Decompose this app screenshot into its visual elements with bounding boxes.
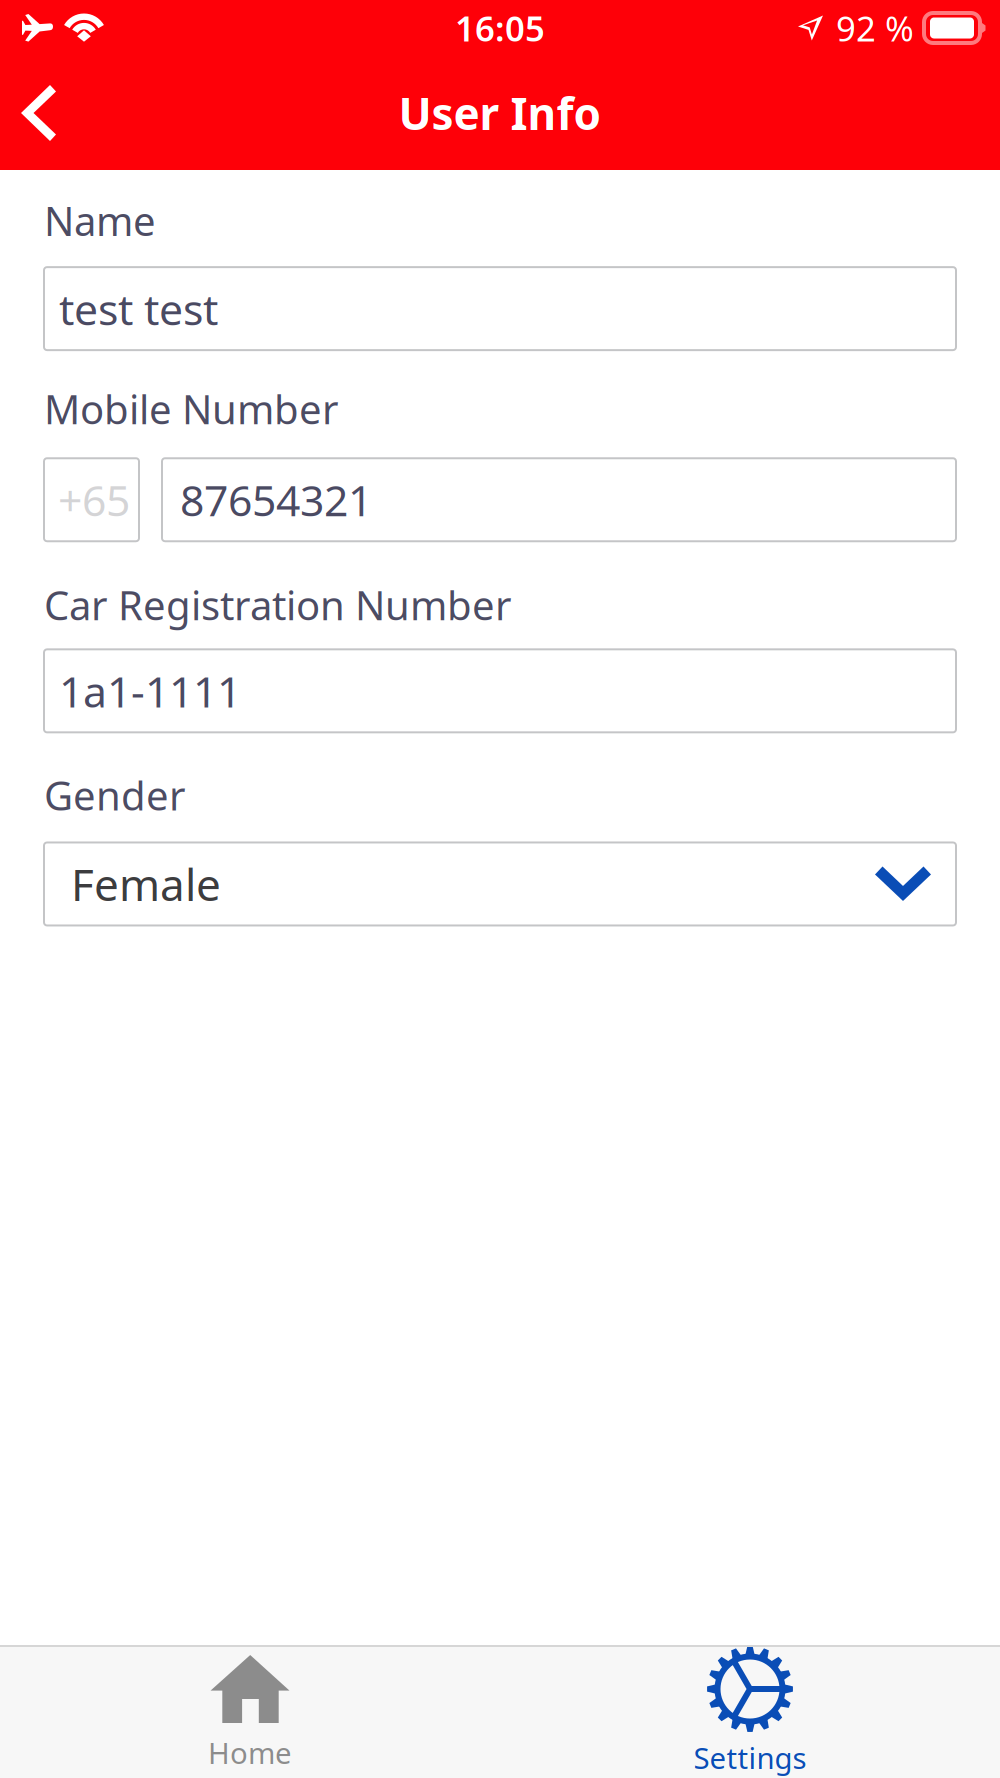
staticText: Gender <box>44 768 186 821</box>
staticText: 92 % <box>836 5 914 51</box>
staticText: 1a1-1111 <box>59 662 241 719</box>
staticText: Settings <box>693 1738 806 1777</box>
staticText: Home <box>208 1733 292 1772</box>
button[interactable]: Back <box>0 57 75 169</box>
staticText: Mobile Number <box>44 382 339 435</box>
staticText: User Info <box>398 84 601 142</box>
staticText: 16:05 <box>455 5 545 51</box>
button[interactable]: Settings <box>500 1636 1000 1778</box>
staticText: 87654321 <box>180 471 372 528</box>
button[interactable]: Female <box>44 842 956 925</box>
staticText: test test <box>59 280 218 337</box>
button[interactable]: Home <box>0 1641 500 1778</box>
staticText: Car Registration Number <box>44 578 512 631</box>
staticText: Female <box>71 855 221 913</box>
staticText: Name <box>44 194 156 247</box>
staticText: +65 <box>58 471 130 528</box>
